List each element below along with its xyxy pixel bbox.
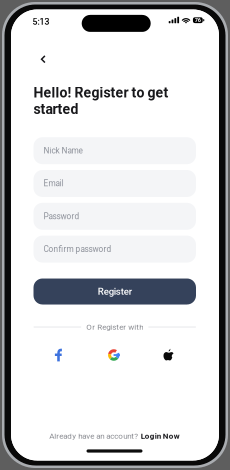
staticText: Email: [43, 179, 63, 188]
staticText: Hello! Register to get started: [33, 85, 168, 117]
staticText: 5:13: [32, 17, 49, 27]
button[interactable]: Continue with Apple: [154, 345, 184, 365]
staticText: Nick Name: [43, 146, 82, 156]
button[interactable]: Nick Name: [33, 137, 196, 164]
staticText: Register: [98, 286, 132, 297]
staticText: Password: [43, 211, 79, 221]
button[interactable]: Email: [33, 170, 196, 197]
button[interactable]: Password: [33, 203, 196, 230]
staticText: Login Now: [141, 431, 180, 441]
button[interactable]: Register: [33, 278, 196, 304]
button[interactable]: Continue with Facebook: [43, 345, 73, 365]
staticText: Already have an account?: [49, 431, 138, 441]
button[interactable]: Continue with Google: [99, 345, 129, 365]
button[interactable]: Already have an account?: [49, 429, 180, 442]
staticText: Confirm password: [43, 244, 111, 254]
staticText: Or Register with: [86, 322, 143, 332]
staticText: 76: [195, 17, 201, 23]
button[interactable]: Back: [32, 49, 54, 69]
button[interactable]: Confirm password: [33, 236, 196, 263]
